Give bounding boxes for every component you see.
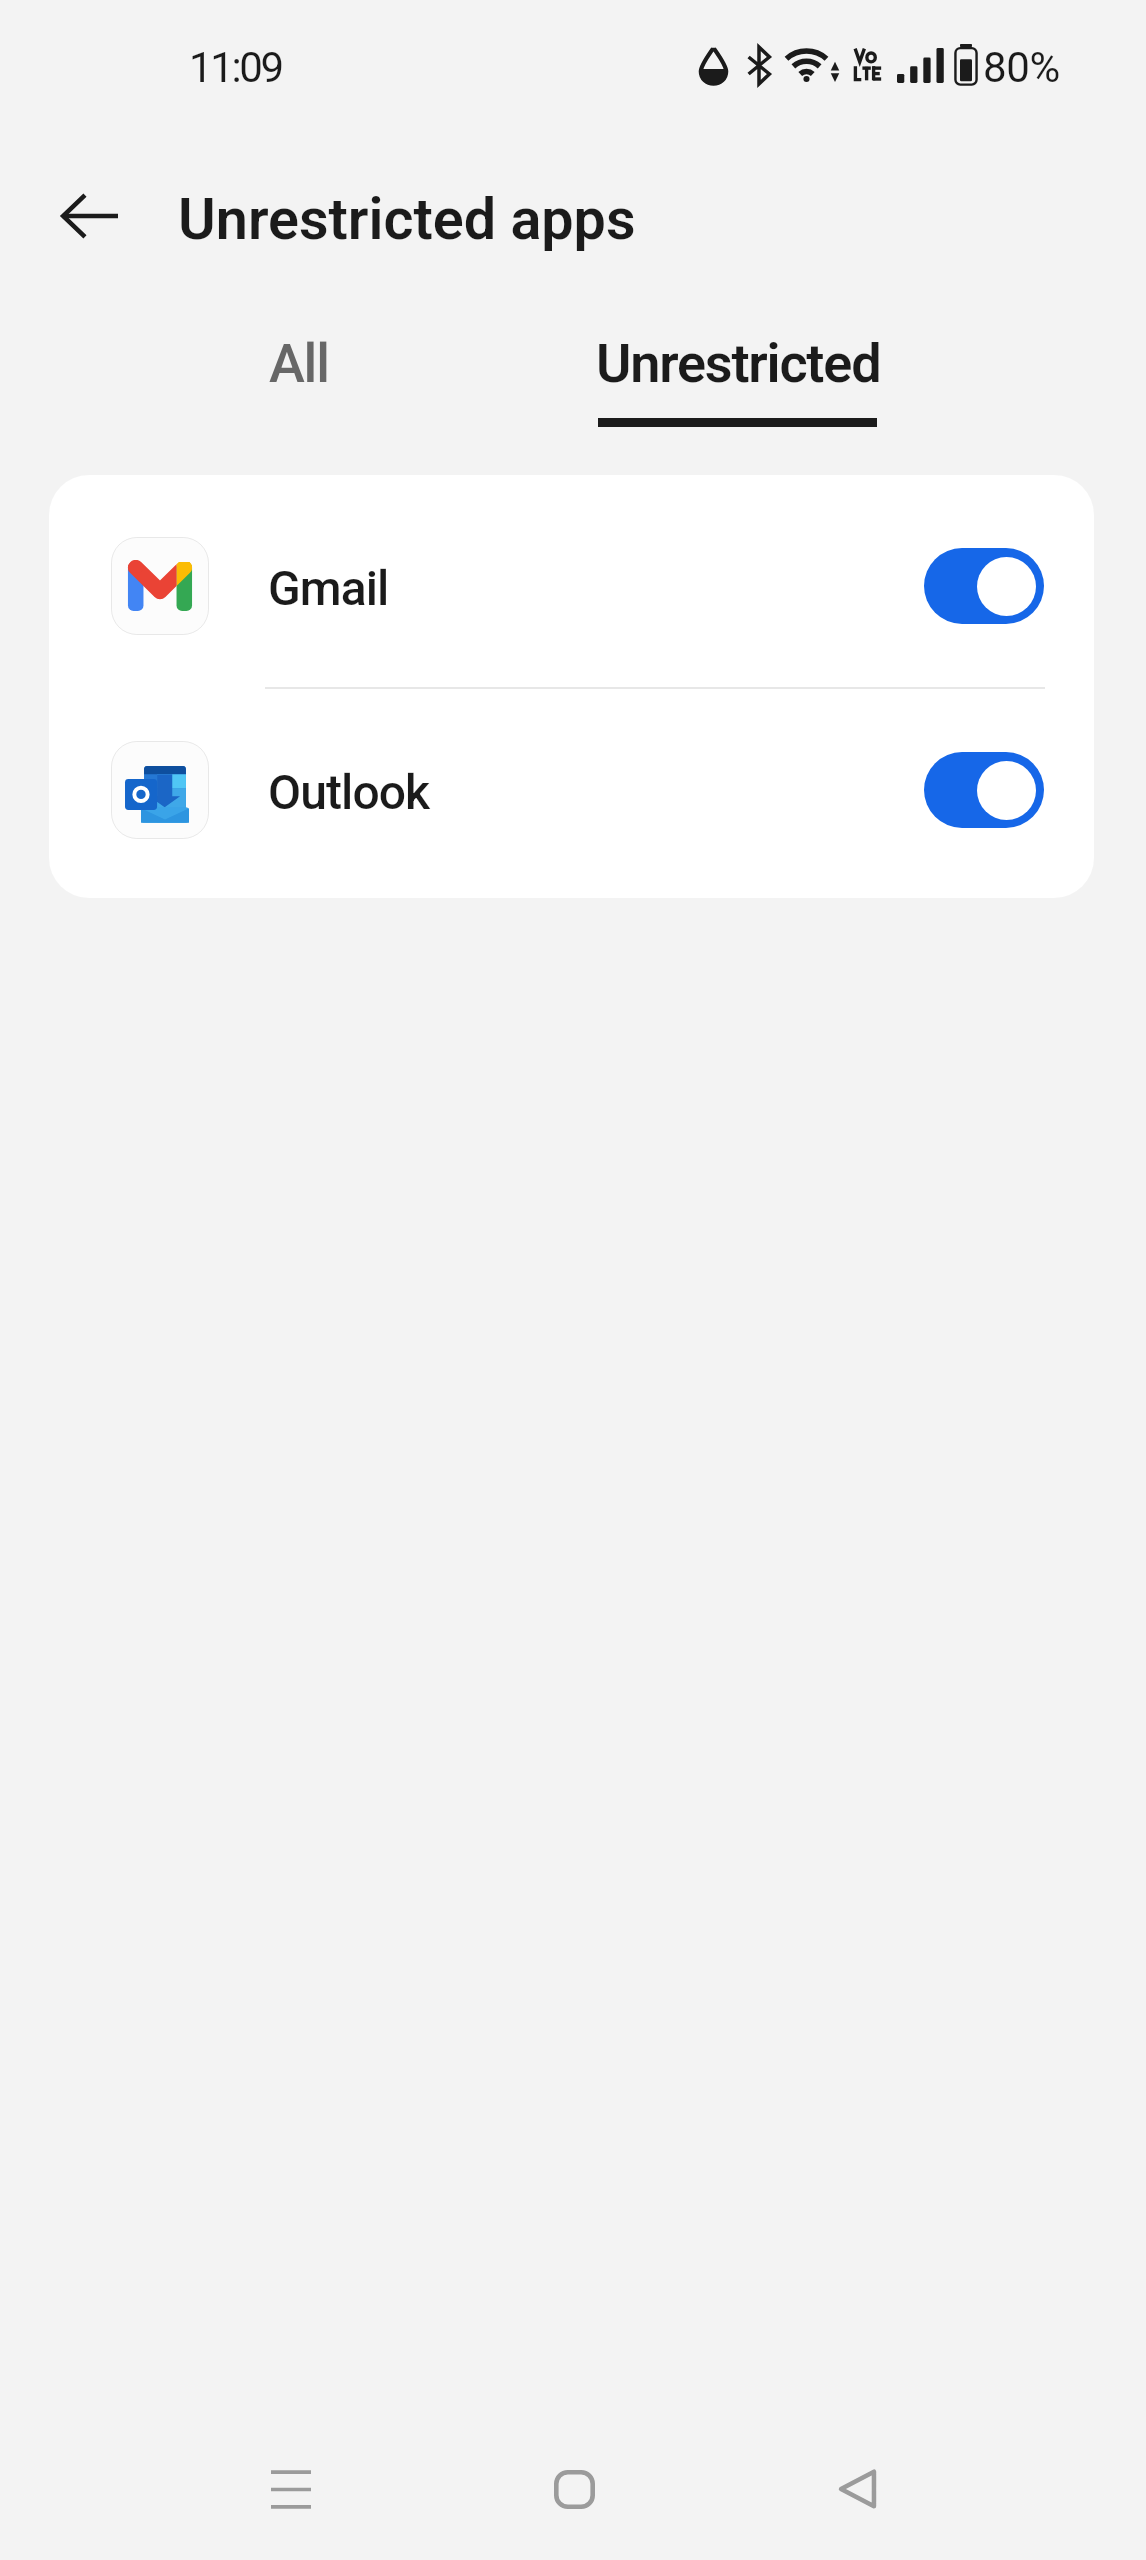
button[interactable]: Unrestricted: [600, 297, 1146, 443]
staticText: All: [269, 332, 329, 395]
button[interactable]: All: [0, 297, 600, 443]
button[interactable]: [49, 475, 1094, 688]
button[interactable]: [49, 688, 1094, 898]
staticText: 11:09: [189, 43, 282, 92]
button[interactable]: Back: [41, 167, 139, 265]
button[interactable]: Toggle Outlook unrestricted: [924, 752, 1044, 828]
staticText: Unrestricted apps: [178, 186, 636, 253]
button[interactable]: Home: [510, 2425, 638, 2553]
staticText: Gmail: [268, 560, 389, 616]
staticText: 80%: [983, 43, 1060, 92]
staticText: Outlook: [268, 764, 430, 820]
button[interactable]: Back: [793, 2425, 921, 2553]
staticText: Unrestricted: [596, 332, 881, 395]
button[interactable]: Recent apps: [227, 2425, 355, 2553]
button[interactable]: Toggle Gmail unrestricted: [924, 548, 1044, 624]
